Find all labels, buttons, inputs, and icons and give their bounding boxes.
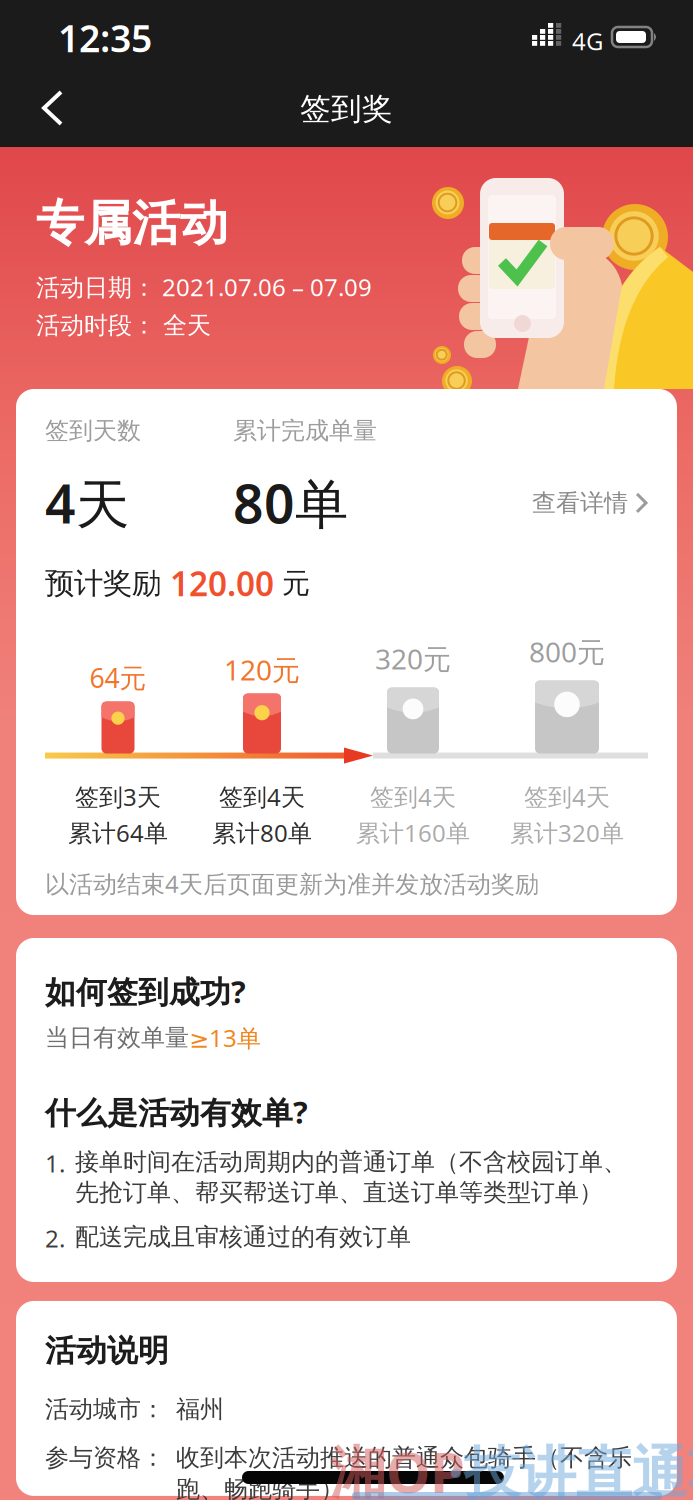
staticText: 签到4天 [219,781,305,812]
staticText: 签到4天 [370,781,456,812]
staticText: 当日有效单量 [45,1023,189,1052]
staticText: 12:35 [58,13,152,63]
staticText: 专属活动 [36,194,228,253]
staticText: 120.00 [170,561,274,606]
staticText: 元 [274,566,310,601]
staticText: 累计64单 [68,817,168,848]
staticText: 先抢订单、帮买帮送订单、直送订单等类型订单） [75,1178,603,1207]
staticText: 签到3天 [75,781,161,812]
staticText: 跑、畅跑骑手） [176,1475,344,1500]
staticText: 4天 [45,467,129,538]
staticText: 120元 [224,651,300,688]
staticText: 配送完成且审核通过的有效订单 [75,1222,411,1252]
staticText: 活动日期： 2021.07.06 – 07.09 [36,271,372,303]
staticText: 查看详情 [532,488,628,518]
staticText: 2. [45,1222,65,1254]
button[interactable] [34,86,74,130]
staticText: ≥13单 [189,1022,261,1054]
staticText: 累计完成单量 [233,416,377,445]
staticText: 收到本次活动推送的普通众包骑手（不含乐 [176,1443,632,1473]
staticText: 活动时段： 全天 [36,311,211,340]
staticText: 福州 [176,1395,224,1424]
staticText: 累计80单 [212,817,312,848]
staticText: 活动城市： [45,1395,165,1424]
staticText: 接单时间在活动周期内的普通订单（不含校园订单、 [75,1147,627,1177]
staticText: 累计320单 [510,817,624,848]
staticText: 800元 [529,633,605,670]
staticText: 签到天数 [45,416,141,445]
staticText: ·技讲直通车 [448,1434,693,1500]
staticText: 以活动结束4天后页面更新为准并发放活动奖励 [45,868,539,899]
staticText: 80单 [233,467,348,538]
staticText: 签到4天 [524,781,610,812]
staticText: 累计160单 [356,817,470,848]
staticText: 签到奖 [300,90,393,128]
staticText: 参与资格： [45,1443,165,1473]
staticText: 1. [45,1147,65,1179]
staticText: 如何签到成功? [45,971,246,1012]
staticText: 320元 [375,640,451,677]
staticText: 4G [572,25,603,57]
staticText: 湘OP [330,1434,465,1500]
staticText: 64元 [89,660,146,695]
staticText: 什么是活动有效单? [45,1092,308,1132]
staticText: 预计奖励 [45,565,170,601]
button[interactable]: 查看详情 [532,488,677,518]
staticText: 活动说明 [45,1332,169,1370]
